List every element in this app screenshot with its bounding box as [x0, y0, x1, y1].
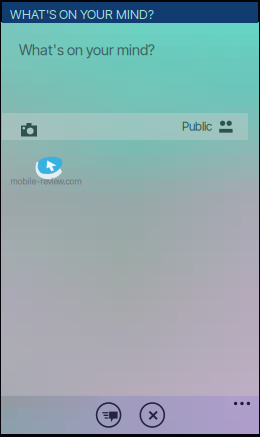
staticText: WHAT'S ON YOUR MIND?	[10, 7, 154, 22]
button[interactable]: Post	[93, 399, 125, 431]
staticText: Public	[182, 119, 212, 134]
button[interactable]: Audience: Public	[182, 113, 248, 140]
staticText: mobile-review.com	[10, 176, 81, 186]
button[interactable]: Cancel	[136, 399, 168, 431]
button[interactable]: Add photo	[2, 113, 50, 140]
staticText: What's on your mind?	[19, 41, 155, 59]
button[interactable]: More options	[233, 398, 257, 412]
